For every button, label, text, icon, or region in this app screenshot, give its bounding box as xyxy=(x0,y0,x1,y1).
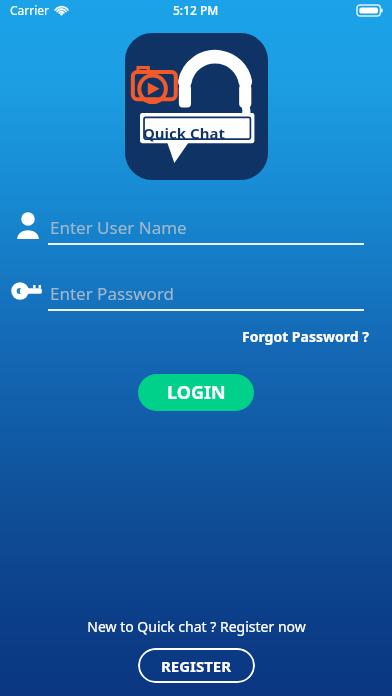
other: User name xyxy=(13,210,43,240)
button[interactable]: REGISTER xyxy=(138,648,255,683)
other: Password xyxy=(13,280,45,302)
staticText: Forgot Password ? xyxy=(242,327,369,346)
button[interactable]: LOGIN xyxy=(138,374,254,411)
button[interactable]: Password xyxy=(0,272,392,316)
button[interactable]: User name xyxy=(0,206,392,250)
staticText: LOGIN xyxy=(167,380,226,405)
staticText: Quick Chat xyxy=(143,123,225,143)
staticText: Enter User Name xyxy=(50,216,187,239)
staticText: Carrier xyxy=(10,2,50,18)
staticText: 5:12 PM xyxy=(173,2,219,18)
staticText: Enter Password xyxy=(50,282,175,305)
button[interactable]: Forgot Password ? xyxy=(242,327,369,346)
staticText: REGISTER xyxy=(161,656,232,676)
staticText: New to Quick chat ? Register now xyxy=(87,617,306,636)
